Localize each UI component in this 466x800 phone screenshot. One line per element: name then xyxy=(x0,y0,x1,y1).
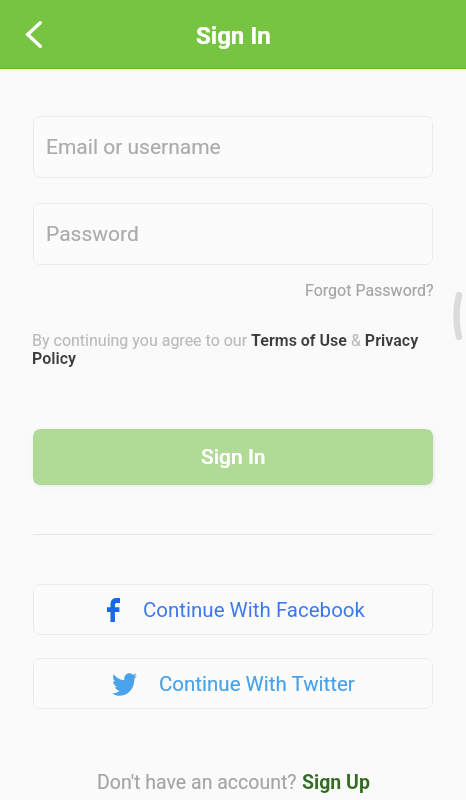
button[interactable]: Sign In xyxy=(33,429,433,485)
staticText: Sign In xyxy=(201,445,266,470)
staticText: Don't have an account? xyxy=(97,771,302,794)
button[interactable]: Password xyxy=(33,203,433,265)
staticText: By continuing you agree to our Terms of … xyxy=(32,331,436,368)
button[interactable]: Email or username xyxy=(33,116,433,178)
staticText: Password xyxy=(46,222,139,247)
button[interactable]: Continue With Facebook xyxy=(33,584,433,635)
button[interactable]: Back xyxy=(11,12,56,57)
button[interactable]: Continue With Twitter xyxy=(33,658,433,709)
staticText: Email or username xyxy=(46,135,221,160)
staticText: Sign In xyxy=(196,22,271,50)
button[interactable]: Sign Up xyxy=(302,771,370,794)
staticText: Continue With Facebook xyxy=(143,598,365,622)
staticText: Sign Up xyxy=(302,771,370,794)
staticText: Continue With Twitter xyxy=(159,672,355,696)
staticText: Forgot Password? xyxy=(305,281,434,300)
button[interactable]: Forgot Password? xyxy=(300,279,434,301)
